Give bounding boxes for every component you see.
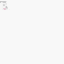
button[interactable]: Add [3,8,6,9]
button[interactable] [5,6,8,8]
button[interactable] [4,9,6,10]
button[interactable] [0,1,6,3]
button[interactable] [3,4,5,6]
button[interactable]: Search [6,1,7,3]
